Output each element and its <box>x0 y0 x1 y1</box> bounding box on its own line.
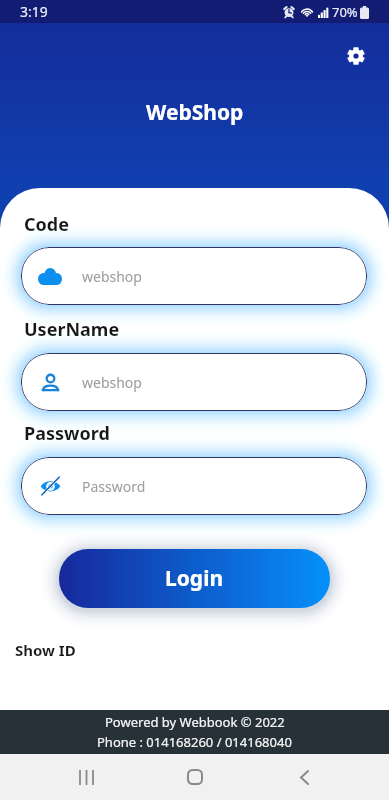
button[interactable]: Settings <box>340 40 372 72</box>
staticText: Login <box>165 564 224 593</box>
button[interactable]: webshop <box>21 353 367 411</box>
staticText: webshop <box>82 373 142 392</box>
button[interactable]: Login <box>59 549 330 608</box>
staticText: Phone : 014168260 / 014168040 <box>97 733 292 751</box>
staticText: UserName <box>24 317 120 342</box>
button[interactable]: Show ID <box>0 638 82 662</box>
staticText: Password <box>82 477 146 496</box>
button[interactable]: webshop <box>21 247 367 305</box>
staticText: 3:19 <box>20 2 48 21</box>
staticText: WebShop <box>146 98 244 127</box>
staticText: 70% <box>332 3 358 21</box>
staticText: webshop <box>82 267 142 286</box>
button[interactable]: Recent apps <box>68 759 104 795</box>
button[interactable]: Password <box>21 457 367 515</box>
button[interactable]: Back <box>286 759 322 795</box>
staticText: Code <box>24 212 69 237</box>
staticText: Password <box>24 421 110 446</box>
staticText: Powered by Webbook © 2022 <box>105 713 285 731</box>
button[interactable]: Home <box>177 759 213 795</box>
